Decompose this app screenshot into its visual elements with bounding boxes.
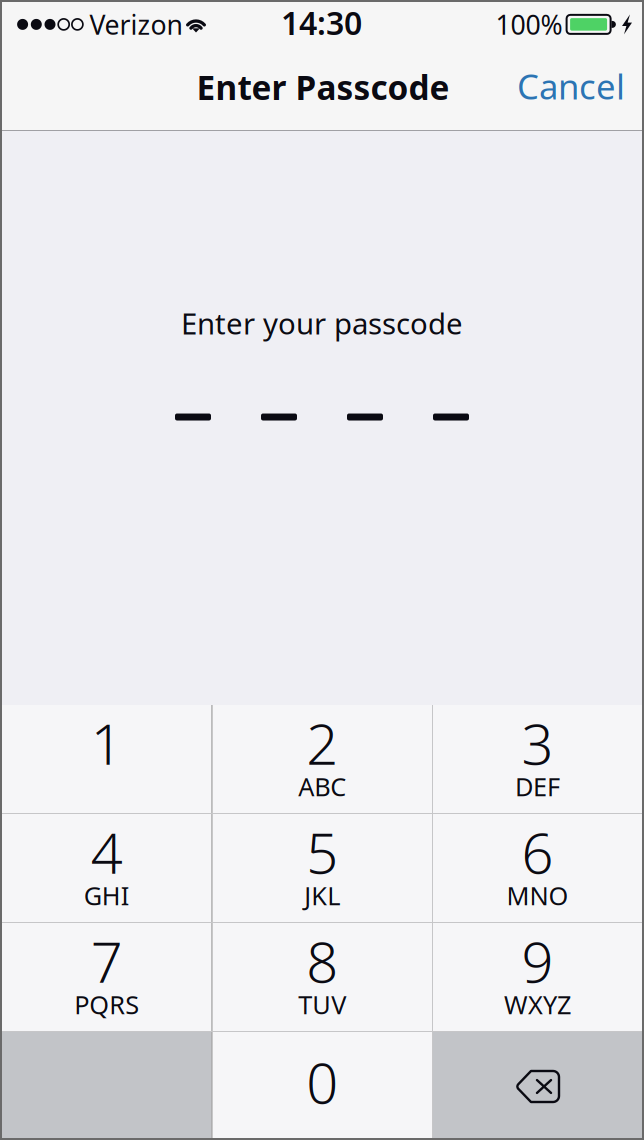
staticText: WXYZ <box>504 988 571 1021</box>
button[interactable]: 7 <box>2 923 211 1031</box>
staticText: 100% <box>495 7 562 42</box>
staticText: GHI <box>84 879 130 912</box>
staticText: 14:30 <box>281 1 362 44</box>
staticText: 9 <box>521 924 553 998</box>
staticText: Enter Passcode <box>196 65 449 109</box>
button[interactable]: 2 <box>212 705 432 813</box>
staticText: JKL <box>304 879 340 912</box>
button[interactable]: 8 <box>212 923 432 1031</box>
staticText: TUV <box>298 988 346 1021</box>
button[interactable]: Delete <box>433 1032 642 1138</box>
staticText: 8 <box>306 924 338 998</box>
staticText: 6 <box>521 815 553 889</box>
button[interactable]: Cancel <box>495 55 642 117</box>
staticText: MNO <box>506 879 568 912</box>
staticText: Cancel <box>517 63 625 109</box>
button[interactable]: 6 <box>433 814 642 922</box>
staticText: Verizon <box>89 7 182 42</box>
staticText: Enter your passcode <box>181 303 463 342</box>
button[interactable]: 1 <box>2 705 211 813</box>
button[interactable]: 3 <box>433 705 642 813</box>
staticText: 5 <box>306 815 338 889</box>
button[interactable]: 5 <box>212 814 432 922</box>
staticText: DEF <box>515 770 560 803</box>
staticText: 0 <box>306 1045 338 1119</box>
staticText: 3 <box>521 706 553 780</box>
staticText: 2 <box>306 706 338 780</box>
staticText: ABC <box>298 770 346 803</box>
button[interactable]: 9 <box>433 923 642 1031</box>
staticText: 7 <box>91 924 123 998</box>
button[interactable]: 0 <box>212 1032 432 1138</box>
button[interactable]: 4 <box>2 814 211 922</box>
staticText: 1 <box>91 706 123 780</box>
staticText: PQRS <box>74 988 139 1021</box>
staticText: 4 <box>91 815 123 889</box>
